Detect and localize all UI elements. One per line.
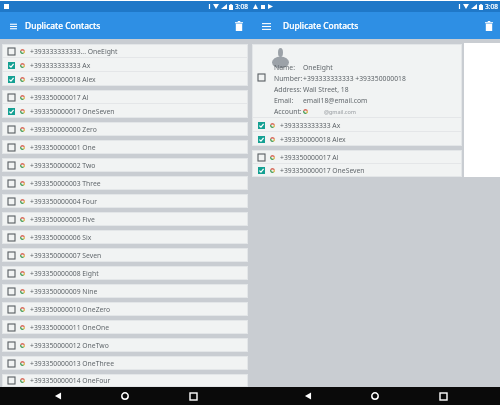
staticText: +393350000001 One <box>30 143 96 152</box>
staticText: Wall Street, 18 <box>303 85 349 94</box>
button[interactable]: +393350000012 OneTwo <box>2 338 248 352</box>
staticText: OneEight <box>303 63 333 72</box>
staticText: @gmail.com <box>324 108 356 115</box>
button[interactable]: +393350000014 OneFour <box>2 374 248 387</box>
button[interactable]: Back <box>48 387 68 405</box>
staticText: +393350000004 Four <box>30 197 97 206</box>
staticText: +393350000010 OneZero <box>30 305 111 314</box>
staticText: +393350000006 Six <box>30 233 92 242</box>
staticText: +393350000018 Alex <box>30 75 96 84</box>
button[interactable]: +393350000018 Alex <box>252 132 462 146</box>
button[interactable]: +393350000008 Eight <box>2 266 248 280</box>
staticText: +393350000000 Zero <box>30 125 97 134</box>
staticText: +393350000017 Al <box>280 153 339 162</box>
staticText: Number: <box>274 74 303 83</box>
staticText: Duplicate Contacts <box>25 20 101 31</box>
staticText: Email: <box>274 96 294 105</box>
staticText: 3:08 <box>235 2 248 11</box>
button[interactable]: +393350000004 Four <box>2 194 248 208</box>
staticText: email18@email.com <box>303 96 368 105</box>
button[interactable]: +393350000003 Three <box>2 176 248 190</box>
staticText: +393350000008 Eight <box>30 269 99 278</box>
button[interactable]: +393350000002 Two <box>2 158 248 172</box>
staticText: Duplicate Contacts <box>283 20 359 31</box>
staticText: +393350000017 Al <box>30 93 89 102</box>
button[interactable]: +393350000009 Nine <box>2 284 248 298</box>
staticText: +393350000009 Nine <box>30 287 98 296</box>
button[interactable]: Delete <box>230 17 248 35</box>
button[interactable]: Back <box>298 387 318 405</box>
staticText: +393350000011 OneOne <box>30 323 109 332</box>
staticText: +393350000002 Two <box>30 161 96 170</box>
staticText: +393350000013 OneThree <box>30 359 114 368</box>
staticText: +393350000018 Alex <box>280 135 346 144</box>
button[interactable]: +393350000000 Zero <box>2 122 248 136</box>
button[interactable]: +393333333333... OneEight <box>2 44 248 58</box>
button[interactable]: +393350000017 OneSeven <box>252 164 462 177</box>
staticText: +393350000017 OneSeven <box>30 107 115 116</box>
button[interactable]: Open navigation menu <box>6 19 20 33</box>
button[interactable]: +393350000010 OneZero <box>2 302 248 316</box>
staticText: +393333333333... OneEight <box>30 47 118 56</box>
staticText: +393350000014 OneFour <box>30 376 111 385</box>
button[interactable]: +393350000017 Al <box>252 150 462 164</box>
button[interactable]: +393350000017 Al <box>2 90 248 104</box>
button[interactable]: Delete <box>480 17 498 35</box>
button[interactable]: Home <box>115 387 135 405</box>
button[interactable]: +393350000018 Alex <box>2 72 248 86</box>
button[interactable]: +393333333333 Ax <box>252 118 462 132</box>
button[interactable]: +393350000013 OneThree <box>2 356 248 370</box>
button[interactable]: Name: <box>252 44 462 118</box>
staticText: +393350000012 OneTwo <box>30 341 109 350</box>
staticText: +393350000003 Three <box>30 179 101 188</box>
staticText: +393350000017 OneSeven <box>280 166 365 175</box>
button[interactable]: +393350000011 OneOne <box>2 320 248 334</box>
button[interactable]: +393350000001 One <box>2 140 248 154</box>
staticText: +393333333333 +393350000018 <box>303 74 406 83</box>
staticText: +393333333333 Ax <box>30 61 91 70</box>
button[interactable]: Home <box>365 387 385 405</box>
staticText: 3:08 <box>485 2 498 11</box>
staticText: Address: <box>274 85 302 94</box>
staticText: +393333333333 Ax <box>280 121 341 130</box>
button[interactable]: +393350000005 Five <box>2 212 248 226</box>
button[interactable]: Recent apps <box>433 387 453 405</box>
button[interactable]: Open navigation menu <box>259 19 273 33</box>
button[interactable]: Recent apps <box>183 387 203 405</box>
button[interactable]: +393350000006 Six <box>2 230 248 244</box>
staticText: Name: <box>274 63 295 72</box>
button[interactable]: +393350000007 Seven <box>2 248 248 262</box>
staticText: Account: <box>274 107 302 116</box>
button[interactable]: +393350000017 OneSeven <box>2 104 248 118</box>
staticText: +393350000005 Five <box>30 215 95 224</box>
staticText: +393350000007 Seven <box>30 251 102 260</box>
button[interactable]: +393333333333 Ax <box>2 58 248 72</box>
